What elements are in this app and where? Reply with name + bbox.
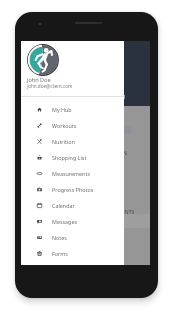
staticText: Shopping List bbox=[52, 154, 87, 161]
staticText: Messages bbox=[52, 218, 78, 225]
staticText: My Hub bbox=[52, 106, 72, 113]
staticText: Nutrition bbox=[52, 138, 75, 145]
staticText: Notes bbox=[52, 234, 67, 241]
button[interactable]: Workouts bbox=[21, 117, 124, 133]
staticText: Workouts bbox=[52, 122, 77, 129]
staticText: Measurements bbox=[52, 170, 90, 177]
button[interactable]: Nutrition bbox=[21, 133, 124, 149]
button[interactable]: John Doe bbox=[21, 41, 124, 265]
button[interactable]: Notes bbox=[21, 229, 124, 245]
staticText: Forms bbox=[52, 250, 68, 257]
button[interactable]: Messages bbox=[21, 213, 124, 229]
staticText: Progress Photos bbox=[52, 186, 94, 193]
staticText: John Doe bbox=[27, 76, 51, 83]
button[interactable]: Measurements bbox=[21, 165, 124, 181]
button[interactable]: Forms bbox=[21, 245, 124, 261]
button[interactable]: My Hub bbox=[21, 101, 124, 117]
staticText: N bbox=[123, 150, 127, 157]
button[interactable]: Calendar bbox=[21, 197, 124, 213]
button[interactable]: Progress Photos bbox=[21, 181, 124, 197]
staticText: Calendar bbox=[52, 202, 75, 209]
staticText: john.doe@client.com bbox=[27, 83, 73, 89]
button[interactable]: Shopping List bbox=[21, 149, 124, 165]
staticText: ENTS bbox=[122, 209, 135, 216]
